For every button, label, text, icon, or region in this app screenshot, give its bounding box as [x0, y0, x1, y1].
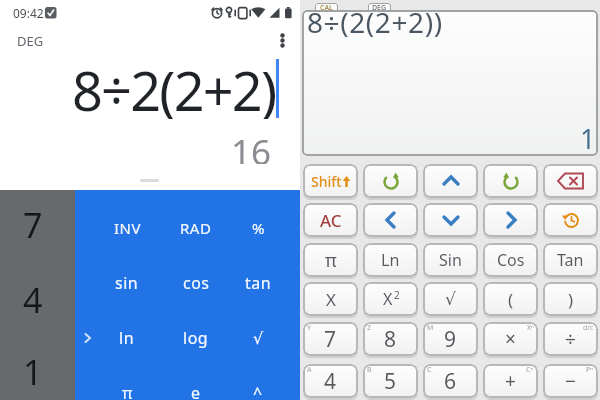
- staticText: ln: [119, 327, 135, 349]
- button[interactable]: ×: [483, 322, 538, 356]
- button[interactable]: π: [99, 373, 155, 400]
- button[interactable]: tan: [230, 263, 286, 303]
- button[interactable]: [483, 164, 538, 198]
- staticText: Tan: [557, 249, 584, 271]
- button[interactable]: π: [303, 243, 358, 277]
- staticText: ×: [505, 326, 516, 352]
- staticText: DEG: [17, 32, 44, 50]
- staticText: π: [325, 248, 337, 273]
- staticText: 2: [394, 288, 400, 302]
- staticText: Y: [307, 323, 311, 333]
- staticText: 16: [231, 128, 272, 164]
- staticText: Shift: [311, 172, 342, 191]
- staticText: 7: [324, 325, 337, 354]
- staticText: 4: [324, 367, 337, 396]
- staticText: 8: [384, 325, 397, 354]
- button[interactable]: 7: [303, 322, 358, 356]
- button[interactable]: 1: [8, 347, 58, 397]
- button[interactable]: +: [483, 364, 538, 398]
- staticText: +: [505, 368, 516, 394]
- button[interactable]: 7: [8, 200, 58, 250]
- staticText: √: [253, 329, 264, 348]
- button[interactable]: X: [303, 282, 358, 316]
- staticText: (: [508, 288, 514, 311]
- staticText: 6: [444, 367, 457, 396]
- staticText: X: [383, 288, 393, 310]
- staticText: 5: [384, 367, 397, 396]
- staticText: e: [191, 382, 201, 400]
- staticText: ÷: [565, 326, 576, 352]
- button[interactable]: [543, 164, 598, 198]
- staticText: d/c: [583, 323, 594, 333]
- button[interactable]: CAL: [315, 3, 338, 13]
- button[interactable]: ^: [230, 373, 286, 400]
- button[interactable]: Cos: [483, 243, 538, 277]
- staticText: 8÷(2(2+2)): [307, 10, 443, 41]
- staticText: 4: [23, 277, 43, 323]
- staticText: ^: [253, 382, 263, 400]
- button[interactable]: 8: [363, 322, 418, 356]
- staticText: Z: [367, 323, 372, 333]
- staticText: A: [307, 365, 312, 375]
- button[interactable]: −: [543, 364, 598, 398]
- button[interactable]: [363, 203, 418, 237]
- staticText: ): [568, 288, 574, 311]
- button[interactable]: 5: [363, 364, 418, 398]
- staticText: 1: [23, 349, 43, 395]
- staticText: tan: [245, 272, 272, 294]
- button[interactable]: ): [543, 282, 598, 316]
- button[interactable]: Sin: [423, 243, 478, 277]
- button[interactable]: Shift: [303, 164, 358, 198]
- staticText: RAD: [180, 218, 212, 238]
- button[interactable]: cos: [168, 263, 224, 303]
- staticText: C: [427, 365, 432, 375]
- button[interactable]: [363, 164, 418, 198]
- button[interactable]: sin: [99, 263, 155, 303]
- staticText: X: [326, 288, 336, 311]
- button[interactable]: [543, 203, 598, 237]
- button[interactable]: [423, 203, 478, 237]
- staticText: 09:42: [13, 5, 44, 21]
- button[interactable]: [483, 203, 538, 237]
- button[interactable]: %: [230, 208, 286, 248]
- staticText: Cos: [497, 249, 525, 271]
- button[interactable]: log: [168, 318, 224, 358]
- button[interactable]: X: [363, 282, 418, 316]
- staticText: DEG: [372, 3, 387, 13]
- button[interactable]: Tan: [543, 243, 598, 277]
- staticText: Pⁿ: [586, 365, 594, 375]
- button[interactable]: ln: [99, 318, 155, 358]
- staticText: −: [565, 368, 576, 394]
- button[interactable]: 4: [8, 275, 58, 325]
- staticText: Xⁿ: [527, 323, 534, 333]
- staticText: %: [252, 218, 265, 238]
- staticText: CAL: [320, 3, 333, 13]
- button[interactable]: INV: [99, 208, 155, 248]
- button[interactable]: 6: [423, 364, 478, 398]
- button[interactable]: e: [168, 373, 224, 400]
- button[interactable]: √: [230, 318, 286, 358]
- staticText: Cⁿ: [526, 365, 534, 375]
- button[interactable]: √: [423, 282, 478, 316]
- staticText: AC: [320, 209, 342, 232]
- staticText: 8÷2(2+2): [72, 53, 276, 119]
- button[interactable]: (: [483, 282, 538, 316]
- staticText: Ln: [381, 249, 400, 271]
- staticText: √: [445, 289, 456, 309]
- button[interactable]: AC: [303, 203, 358, 237]
- staticText: log: [183, 327, 209, 349]
- staticText: π: [122, 382, 133, 400]
- button[interactable]: [274, 29, 292, 51]
- button[interactable]: [423, 164, 478, 198]
- button[interactable]: ÷: [543, 322, 598, 356]
- staticText: 9: [444, 325, 457, 354]
- button[interactable]: RAD: [168, 208, 224, 248]
- staticText: 1: [580, 120, 596, 150]
- staticText: sin: [115, 272, 139, 294]
- staticText: M: [427, 323, 434, 333]
- button[interactable]: Ln: [363, 243, 418, 277]
- staticText: 7: [23, 202, 43, 248]
- button[interactable]: DEG: [368, 3, 391, 13]
- button[interactable]: 4: [303, 364, 358, 398]
- button[interactable]: 9: [423, 322, 478, 356]
